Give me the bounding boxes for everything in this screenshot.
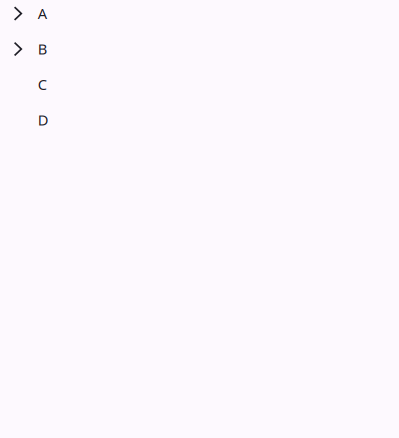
button[interactable]: A [0, 0, 399, 35]
button[interactable]: B [0, 35, 399, 71]
staticText: A [38, 3, 47, 23]
button[interactable]: D [0, 106, 399, 142]
staticText: B [38, 39, 48, 58]
staticText: D [38, 110, 49, 129]
staticText: C [38, 74, 47, 94]
button[interactable]: C [0, 71, 399, 106]
